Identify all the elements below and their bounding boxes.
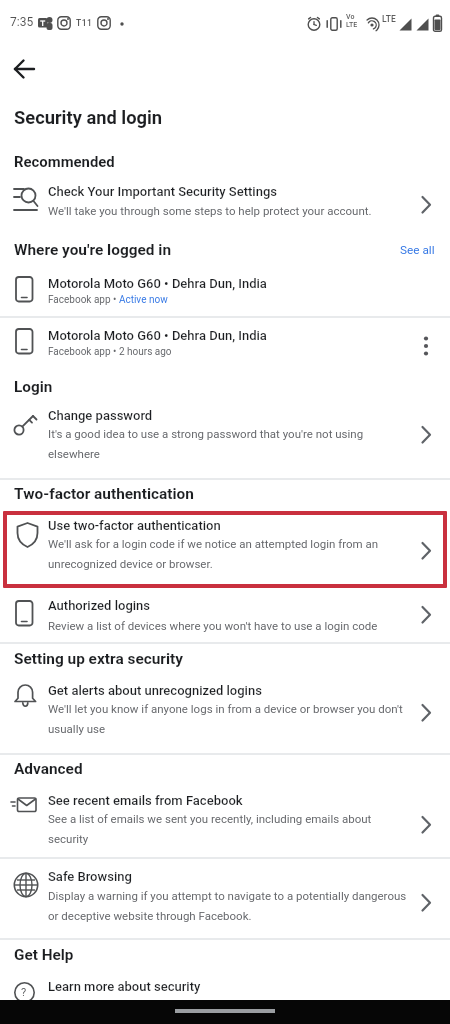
staticText: Two-factor authentication: [14, 485, 194, 503]
staticText: unrecognized device or browser.: [48, 557, 213, 570]
staticText: Security and login: [14, 107, 163, 128]
staticText: Authorized logins: [48, 598, 151, 613]
staticText: Facebook app • 2 hours ago: [48, 346, 172, 358]
staticText: We'll let you know if anyone logs in fro…: [48, 702, 403, 715]
staticText: See recent emails from Facebook: [48, 793, 243, 808]
staticText: Change password: [48, 408, 153, 423]
staticText: Display a warning if you attempt to navi…: [48, 889, 407, 902]
button[interactable]: Use two-factor authentication: [3, 511, 447, 588]
staticText: Recommended: [14, 153, 115, 170]
staticText: 7:35: [10, 15, 34, 29]
staticText: LTE: [346, 21, 358, 29]
staticText: Check Your Important Security Settings: [48, 184, 277, 199]
staticText: elsewhere: [48, 447, 100, 460]
button[interactable]: Change password: [0, 398, 450, 472]
staticText: Advanced: [14, 760, 83, 778]
staticText: Safe Browsing: [48, 869, 132, 884]
staticText: T11: [76, 18, 93, 28]
button[interactable]: Authorized logins: [0, 592, 450, 641]
staticText: security: [48, 832, 89, 845]
staticText: Get alerts about unrecognized logins: [48, 683, 262, 698]
staticText: Motorola Moto G60 • Dehra Dun, India: [48, 276, 267, 291]
staticText: LTE: [382, 14, 396, 24]
button[interactable]: See all: [392, 240, 446, 264]
staticText: usually use: [48, 722, 106, 735]
staticText: We'll ask for a login code if we notice …: [48, 537, 379, 550]
staticText: Where you're logged in: [14, 241, 172, 259]
staticText: Motorola Moto G60 • Dehra Dun, India: [48, 328, 267, 343]
button[interactable]: Motorola Moto G60 • Dehra Dun, India: [0, 268, 450, 316]
staticText: or deceptive website through Facebook.: [48, 909, 252, 922]
staticText: See a list of emails we sent you recentl…: [48, 812, 372, 825]
staticText: Use two-factor authentication: [48, 518, 221, 533]
button[interactable]: ?: [0, 968, 450, 1000]
staticText: It's a good idea to use a strong passwor…: [48, 427, 364, 440]
staticText: Vo: [346, 13, 355, 21]
button[interactable]: Get alerts about unrecognized logins: [0, 672, 450, 750]
button[interactable]: Safe Browsing: [0, 860, 450, 936]
button[interactable]: Check Your Important Security Settings: [0, 176, 450, 224]
staticText: Get Help: [14, 946, 74, 964]
button[interactable]: Motorola Moto G60 • Dehra Dun, India: [0, 317, 450, 366]
staticText: See all: [400, 243, 435, 257]
button[interactable]: See recent emails from Facebook: [0, 784, 450, 854]
button[interactable]: [6, 54, 44, 84]
staticText: We'll take you through some steps to hel…: [48, 204, 372, 217]
staticText: Learn more about security: [48, 979, 201, 994]
staticText: ?: [21, 986, 27, 999]
staticText: Setting up extra security: [14, 650, 183, 668]
staticText: Facebook app • Active now: [48, 294, 168, 306]
staticText: Login: [14, 378, 53, 396]
staticText: Review a list of devices where you won't…: [48, 619, 378, 632]
